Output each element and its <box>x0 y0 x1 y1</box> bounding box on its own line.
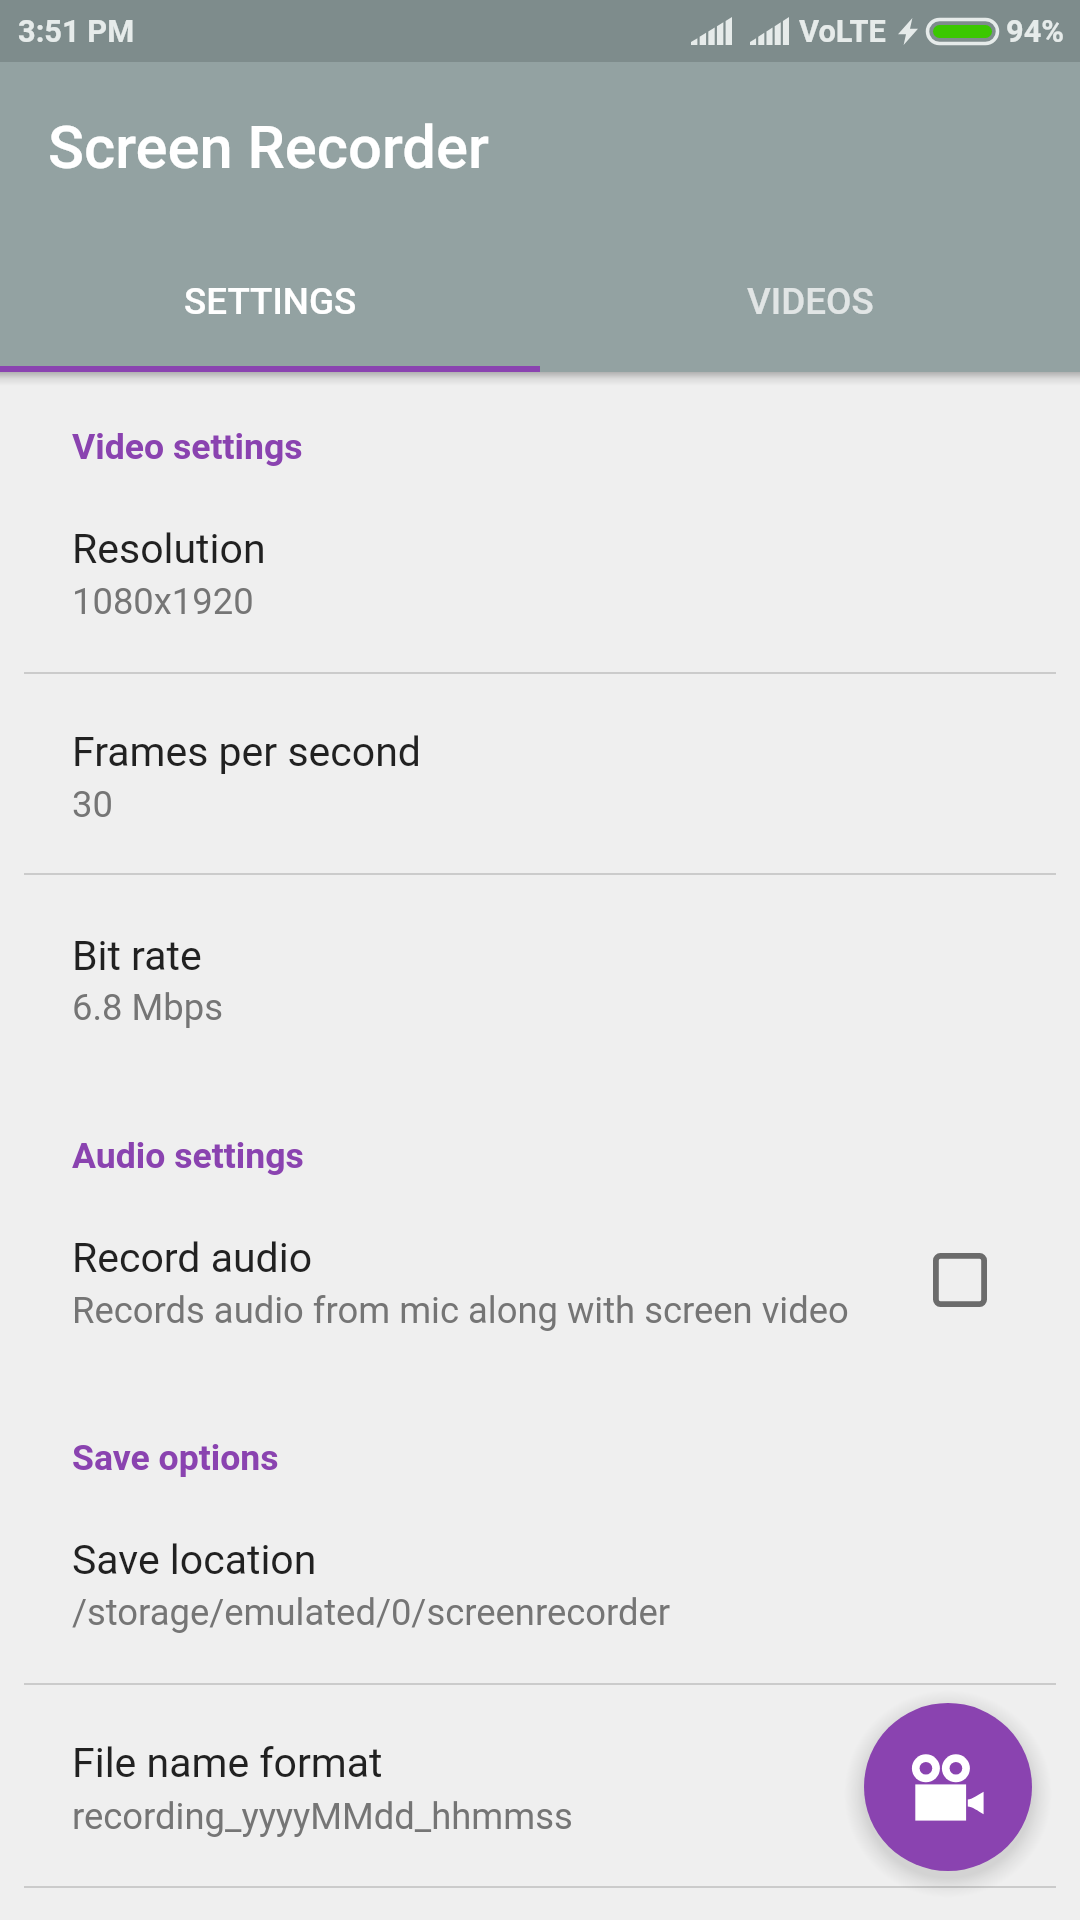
staticText: 94% <box>1006 13 1065 49</box>
button[interactable]: Resolution <box>0 468 1080 672</box>
button[interactable]: Save location <box>0 1479 1080 1683</box>
button[interactable]: VIDEOS <box>540 280 1080 376</box>
staticText: Resolution <box>72 525 266 573</box>
staticText: VoLTE <box>799 13 886 49</box>
staticText: 3:51 PM <box>18 13 135 49</box>
staticText: File name format <box>72 1739 383 1787</box>
staticText: Screen Recorder <box>48 113 489 183</box>
staticText: recording_yyyyMMdd_hhmmss <box>72 1795 573 1838</box>
staticText: Audio settings <box>72 1135 304 1177</box>
staticText: Bit rate <box>72 932 202 980</box>
staticText: Records audio from mic along with screen… <box>72 1289 849 1332</box>
staticText: VIDEOS <box>747 280 874 323</box>
staticText: 1080x1920 <box>72 580 254 623</box>
staticText: /storage/emulated/0/screenrecorder <box>72 1591 671 1634</box>
button[interactable]: File name format <box>0 1685 1080 1886</box>
staticText: Video settings <box>72 426 303 468</box>
button[interactable]: Frames per second <box>0 674 1080 873</box>
button[interactable]: Bit rate <box>0 875 1080 1077</box>
staticText: 30 <box>72 783 113 826</box>
button[interactable]: Record audio <box>0 1177 1080 1380</box>
staticText: SETTINGS <box>184 280 357 323</box>
button[interactable]: Start recording <box>864 1703 1032 1871</box>
staticText: Save options <box>72 1437 279 1479</box>
staticText: Save location <box>72 1536 317 1584</box>
staticText: Record audio <box>72 1234 313 1282</box>
staticText: Frames per second <box>72 728 421 776</box>
button[interactable]: SETTINGS <box>0 280 540 376</box>
staticText: 6.8 Mbps <box>72 986 223 1029</box>
